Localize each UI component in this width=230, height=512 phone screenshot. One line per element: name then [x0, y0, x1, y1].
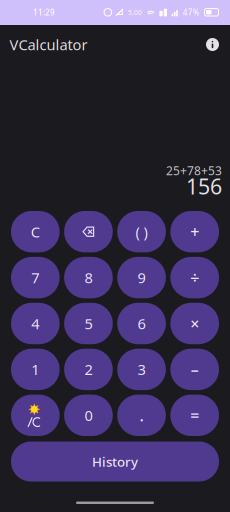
staticText: 5.00 [128, 8, 142, 17]
staticText: 0 [84, 406, 92, 425]
button[interactable]: C [11, 211, 60, 252]
button[interactable] [64, 211, 113, 252]
button[interactable]: 7 [11, 257, 60, 298]
button[interactable]: + [170, 211, 219, 252]
button[interactable]: 2 [64, 349, 113, 390]
staticText: 25+78+53 [166, 163, 222, 178]
staticText: 5 [84, 314, 92, 333]
staticText: 2 [84, 360, 92, 379]
staticText: C [31, 222, 40, 241]
staticText: = [190, 405, 199, 426]
button[interactable]: 4 [11, 303, 60, 344]
staticText: 156 [186, 172, 222, 200]
staticText: 1 [31, 360, 39, 379]
staticText: 47% [183, 7, 200, 18]
staticText: . [140, 405, 144, 426]
button[interactable]: 8 [64, 257, 113, 298]
button[interactable]: 5 [64, 303, 113, 344]
button[interactable] [11, 395, 60, 436]
staticText: + [190, 221, 199, 242]
staticText: 3 [138, 360, 146, 379]
button[interactable]: 9 [117, 257, 166, 298]
staticText: History [92, 453, 138, 470]
button[interactable]: ÷ [170, 257, 219, 298]
staticText: – [191, 359, 199, 380]
staticText: ( ) [136, 222, 148, 241]
button[interactable]: – [170, 349, 219, 390]
button[interactable]: History [11, 441, 219, 481]
button[interactable]: 1 [11, 349, 60, 390]
staticText: 7 [31, 268, 39, 287]
button[interactable]: = [170, 395, 219, 436]
staticText: × [190, 313, 199, 334]
button[interactable]: 6 [117, 303, 166, 344]
staticText: 6 [138, 314, 146, 333]
button[interactable]: 3 [117, 349, 166, 390]
staticText: 9 [138, 268, 146, 287]
button[interactable]: × [170, 303, 219, 344]
staticText: 11:29 [33, 7, 55, 18]
button[interactable]: 0 [64, 395, 113, 436]
staticText: ÷ [190, 267, 199, 288]
staticText: VCalculator [9, 35, 87, 54]
staticText: 8 [84, 268, 92, 287]
staticText: 4 [31, 314, 39, 333]
button[interactable]: ( ) [117, 211, 166, 252]
button[interactable]: . [117, 395, 166, 436]
button[interactable]: App info [206, 38, 219, 51]
